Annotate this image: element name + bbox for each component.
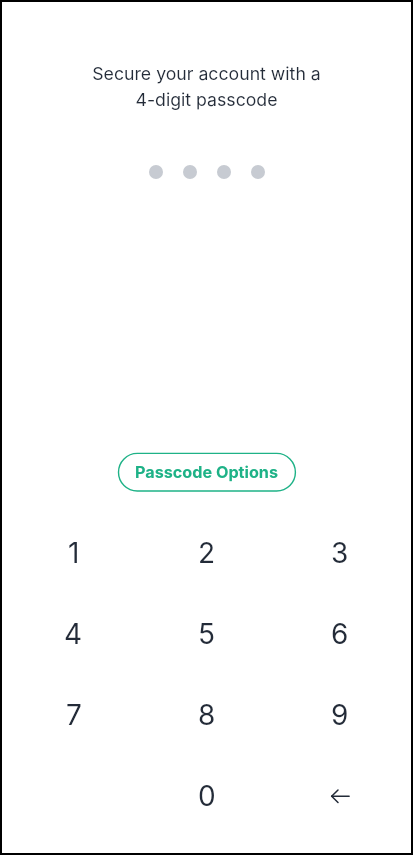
button[interactable]: 9 xyxy=(273,674,406,755)
button[interactable]: 4 xyxy=(7,593,140,674)
button[interactable]: Backspace xyxy=(273,755,406,836)
staticText: 2 xyxy=(198,536,216,570)
button[interactable]: 0 xyxy=(140,755,273,836)
button[interactable]: 3 xyxy=(273,512,406,593)
staticText: 8 xyxy=(198,698,216,732)
button[interactable]: 1 xyxy=(7,512,140,593)
staticText: 3 xyxy=(331,536,349,570)
staticText: 4 xyxy=(64,617,83,651)
staticText: 5 xyxy=(198,617,216,651)
button[interactable]: 6 xyxy=(273,593,406,674)
staticText: Passcode Options xyxy=(135,462,279,482)
staticText: 7 xyxy=(66,698,82,732)
staticText: 9 xyxy=(331,698,349,732)
staticText: Secure your account with a 4-digit passc… xyxy=(0,63,413,110)
button[interactable]: 7 xyxy=(7,674,140,755)
button[interactable]: Passcode Options xyxy=(117,452,297,493)
button[interactable]: 8 xyxy=(140,674,273,755)
button[interactable]: 5 xyxy=(140,593,273,674)
staticText: 0 xyxy=(198,779,216,813)
button[interactable]: 2 xyxy=(140,512,273,593)
staticText: 6 xyxy=(331,617,349,651)
staticText: 1 xyxy=(68,536,80,570)
